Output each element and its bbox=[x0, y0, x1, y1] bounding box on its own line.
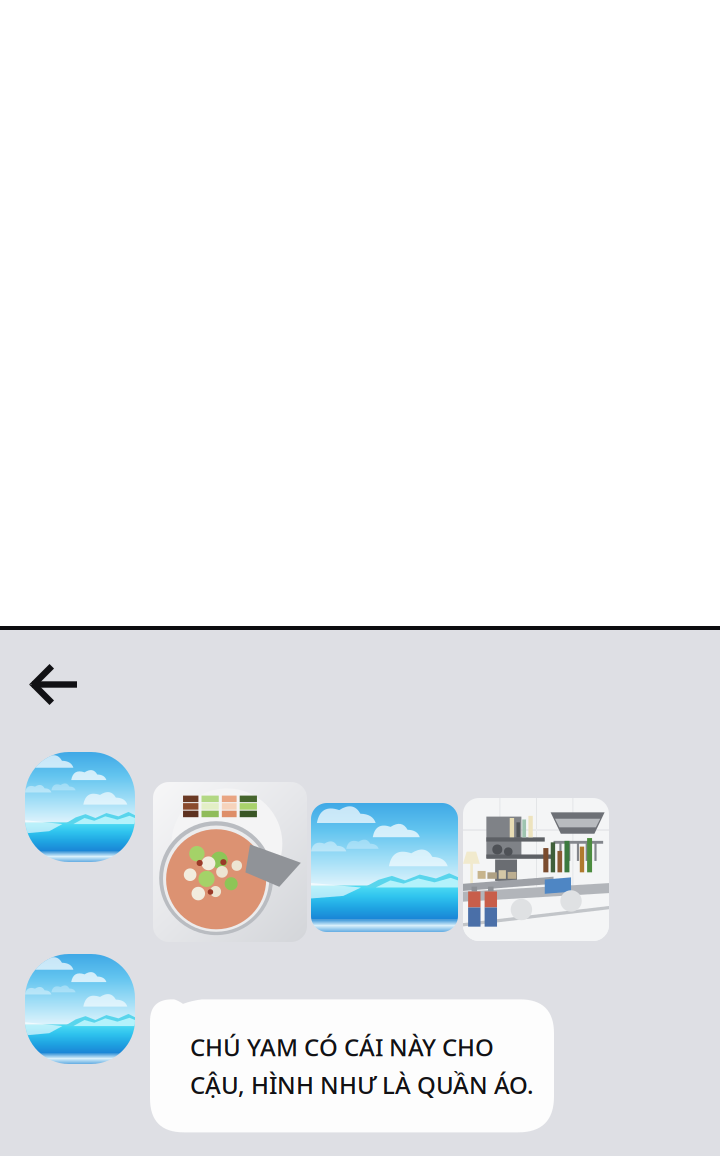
button[interactable]: Photo of the sea bbox=[311, 803, 458, 932]
button[interactable]: Chú Yam profile picture bbox=[25, 752, 135, 862]
button[interactable]: Chú Yam profile picture bbox=[25, 954, 135, 1064]
button[interactable]: Back bbox=[0, 630, 95, 719]
staticText: CHÚ YAM CÓ CÁI NÀY CHO bbox=[190, 1031, 494, 1063]
button[interactable]: Photo of a kitchen bbox=[463, 798, 609, 941]
button[interactable]: CHÚ YAM CÓ CÁI NÀY CHO bbox=[150, 1001, 554, 1131]
button[interactable]: Photo of a hot pot bbox=[153, 782, 307, 942]
staticText: CẬU, HÌNH NHƯ LÀ QUẦN ÁO. bbox=[190, 1069, 534, 1101]
